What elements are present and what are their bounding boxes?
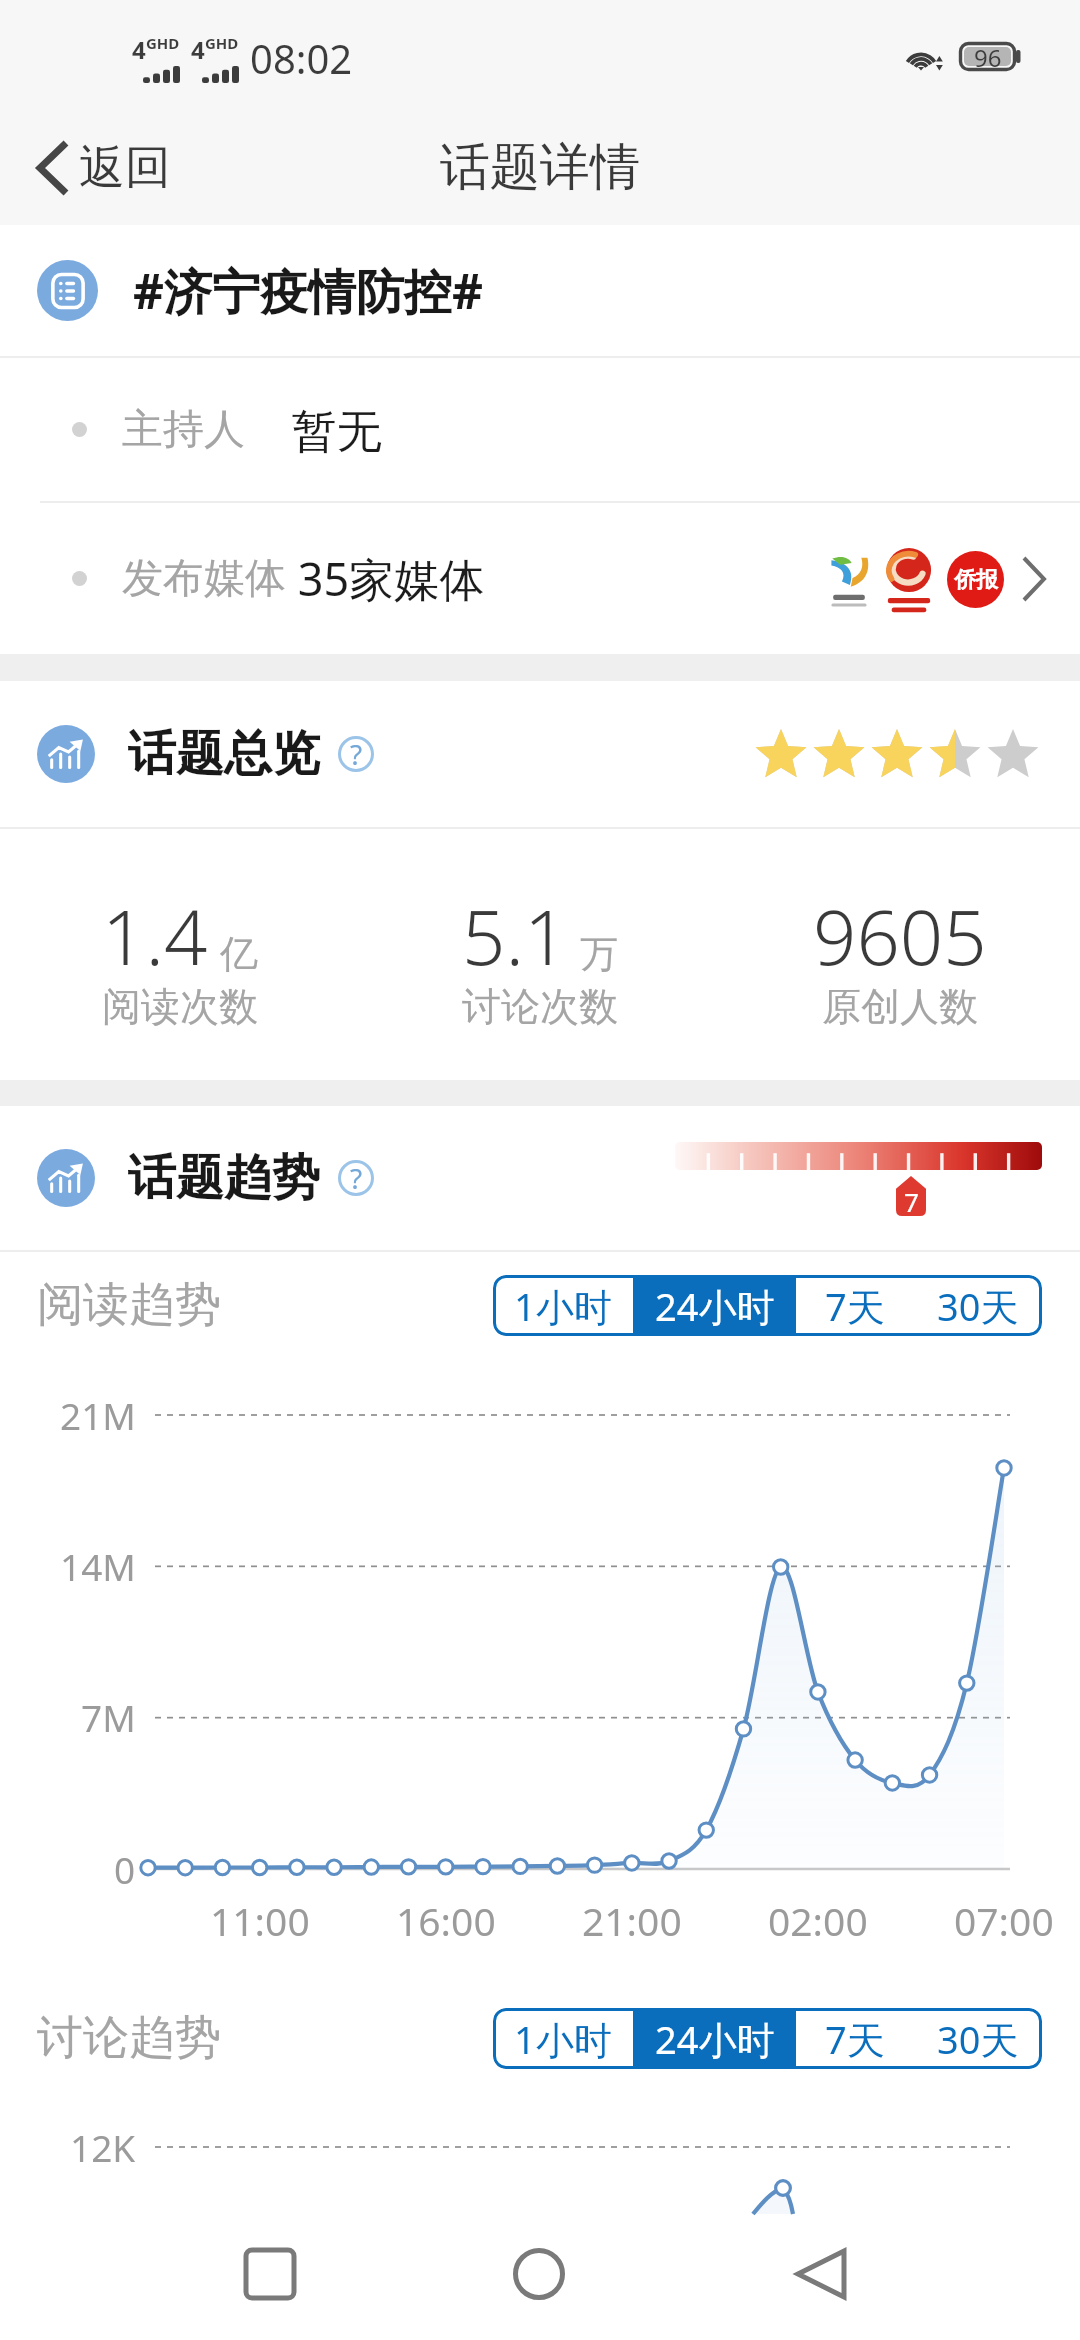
staticText: 24小时	[655, 2013, 775, 2065]
staticText: 话题趋势	[128, 1148, 320, 1208]
staticText: 96	[974, 41, 1002, 70]
staticText: 7天	[825, 2013, 885, 2065]
button[interactable]: 30天	[913, 2008, 1042, 2069]
staticText: 16:00	[396, 1894, 496, 1947]
button[interactable]: 24小时	[633, 1275, 796, 1336]
staticText: 原创人数	[822, 982, 978, 1031]
button[interactable]: 发布媒体	[0, 503, 1080, 654]
staticText: 1小时	[514, 1280, 612, 1332]
staticText: 讨论趋势	[37, 2009, 221, 2067]
staticText: 30天	[937, 1280, 1019, 1332]
staticText: 话题详情	[440, 136, 640, 199]
button[interactable]: 30天	[913, 1275, 1042, 1336]
staticText: 阅读次数	[102, 982, 258, 1031]
staticText: 0	[114, 1844, 136, 1894]
button[interactable]: #济宁疫情防控#	[0, 225, 1080, 356]
staticText: 暂无	[245, 399, 382, 460]
staticText: GHD	[146, 33, 180, 53]
staticText: 亿	[220, 930, 258, 978]
staticText: 主持人	[122, 404, 245, 456]
button[interactable]: 24小时	[633, 2008, 796, 2069]
staticText: 24小时	[655, 1280, 775, 1332]
staticText: 21M	[60, 1390, 136, 1440]
staticText: #济宁疫情防控#	[133, 258, 484, 324]
staticText: 30天	[937, 2013, 1019, 2065]
button[interactable]: Recent apps	[210, 2214, 330, 2334]
staticText: 35家媒体	[286, 548, 485, 609]
staticText: 万	[580, 930, 618, 978]
button[interactable]: 1小时	[493, 1275, 633, 1336]
staticText: 08:02	[250, 31, 353, 85]
staticText: 9605	[813, 884, 987, 988]
staticText: 11:00	[210, 1894, 310, 1947]
staticText: 5.1	[462, 884, 568, 988]
staticText: 4	[132, 33, 146, 66]
staticText: 侨报	[954, 566, 998, 594]
staticText: 07:00	[954, 1894, 1054, 1947]
staticText: 发布媒体	[122, 553, 286, 605]
staticText: 讨论次数	[462, 982, 618, 1031]
staticText: ?	[350, 735, 363, 771]
staticText: GHD	[205, 33, 239, 53]
button[interactable]: 7天	[796, 1275, 913, 1336]
staticText: 话题总览	[128, 724, 320, 784]
staticText: 4	[191, 33, 205, 66]
button[interactable]: Home	[479, 2214, 599, 2334]
staticText: 1小时	[514, 2013, 612, 2065]
staticText: 1.4	[102, 884, 208, 988]
staticText: ?	[350, 1159, 363, 1195]
button[interactable]: Back	[761, 2214, 881, 2334]
staticText: 7	[904, 1184, 919, 1219]
staticText: 21:00	[582, 1894, 682, 1947]
button[interactable]: 主持人	[0, 358, 1080, 501]
staticText: 02:00	[768, 1894, 868, 1947]
staticText: 12K	[70, 2122, 136, 2172]
staticText: 7天	[825, 1280, 885, 1332]
staticText: 返回	[79, 139, 171, 197]
staticText: 阅读趋势	[37, 1276, 221, 1334]
button[interactable]: 返回	[0, 125, 195, 211]
button[interactable]: 1小时	[493, 2008, 633, 2069]
staticText: 7M	[81, 1692, 136, 1742]
button[interactable]: 7天	[796, 2008, 913, 2069]
staticText: 14M	[60, 1541, 136, 1591]
